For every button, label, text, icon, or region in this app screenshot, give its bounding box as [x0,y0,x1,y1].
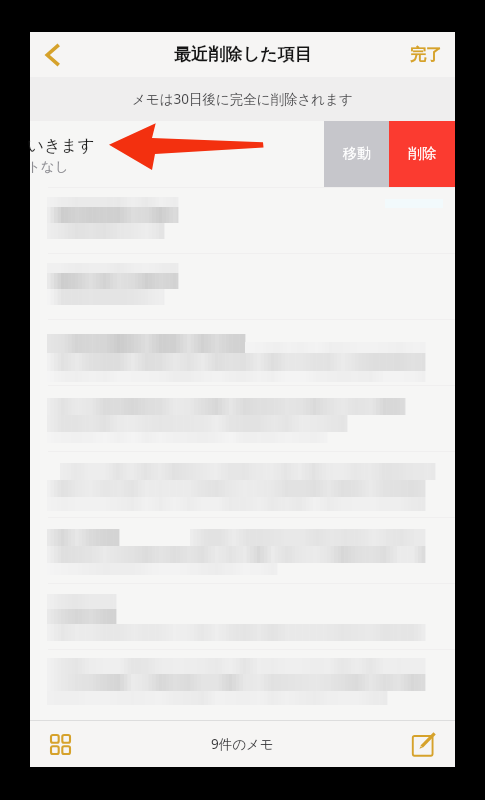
staticText: 最近削除した項目 [174,44,312,65]
staticText: トなし [27,158,69,175]
staticText: 完了 [410,45,442,65]
button[interactable]: 完了 [397,32,455,77]
button[interactable]: 移動 [324,121,389,187]
staticText: 削除 [408,145,436,163]
button[interactable]: 新規メモ [407,726,443,762]
staticText: 9件のメモ [211,735,274,753]
button[interactable]: ギャラリー表示 [42,726,78,762]
staticText: 移動 [343,145,371,163]
staticText: いきます [27,135,95,156]
staticText: メモは30日後に完全に削除されます [132,90,353,108]
button[interactable]: 戻る [30,32,76,77]
button[interactable]: 削除 [389,121,455,187]
